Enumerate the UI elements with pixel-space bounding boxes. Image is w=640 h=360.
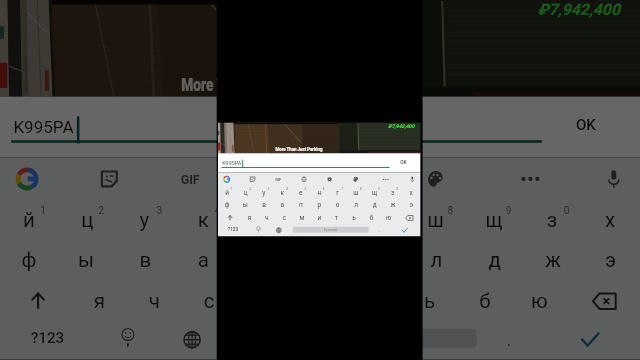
button[interactable]: Video player (0, 0, 640, 360)
